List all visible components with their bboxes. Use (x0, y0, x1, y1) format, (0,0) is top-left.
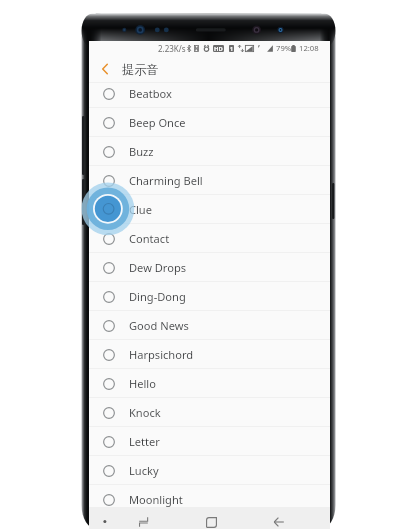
staticText: 79% (276, 43, 292, 53)
button[interactable]: Hello (89, 369, 330, 398)
staticText: Buzz (129, 144, 154, 159)
button[interactable]: Contact (89, 224, 330, 253)
button[interactable]: Clue (89, 195, 330, 224)
staticText: 12:08 (299, 43, 319, 53)
button[interactable]: Lucky (89, 456, 330, 485)
staticText: Hello (129, 376, 156, 391)
staticText: Moonlight (129, 492, 183, 507)
button[interactable]: Letter (89, 427, 330, 456)
button[interactable]: Knock (89, 398, 330, 427)
staticText: Lucky (129, 463, 159, 478)
staticText: Letter (129, 434, 160, 449)
staticText: Knock (129, 405, 161, 420)
button[interactable]: Recents (133, 507, 153, 529)
button[interactable]: Back (96, 60, 114, 78)
button[interactable]: Back (269, 507, 289, 529)
staticText: 1 (230, 45, 233, 52)
button[interactable]: Buzz (89, 137, 330, 166)
staticText: Contact (129, 231, 170, 246)
staticText: Dew Drops (129, 260, 187, 275)
button[interactable]: Good News (89, 311, 330, 340)
staticText: HD (214, 45, 223, 52)
button[interactable]: Harpsichord (89, 340, 330, 369)
staticText: Harpsichord (129, 347, 194, 362)
button[interactable]: Home (201, 507, 221, 529)
staticText: Good News (129, 318, 189, 333)
button[interactable]: Charming Bell (89, 166, 330, 195)
staticText: 提示音 (122, 62, 159, 77)
button[interactable]: Beep Once (89, 108, 330, 137)
staticText: Ding-Dong (129, 289, 186, 304)
staticText: 2.23K/s (158, 43, 186, 54)
button[interactable]: Dew Drops (89, 253, 330, 282)
button[interactable]: Beatbox (89, 83, 330, 108)
staticText: Charming Bell (129, 173, 203, 188)
staticText: Beep Once (129, 115, 186, 130)
button[interactable]: Moonlight (89, 485, 330, 514)
staticText: Beatbox (129, 86, 172, 101)
button[interactable]: Ding-Dong (89, 282, 330, 311)
staticText: Clue (129, 202, 152, 217)
